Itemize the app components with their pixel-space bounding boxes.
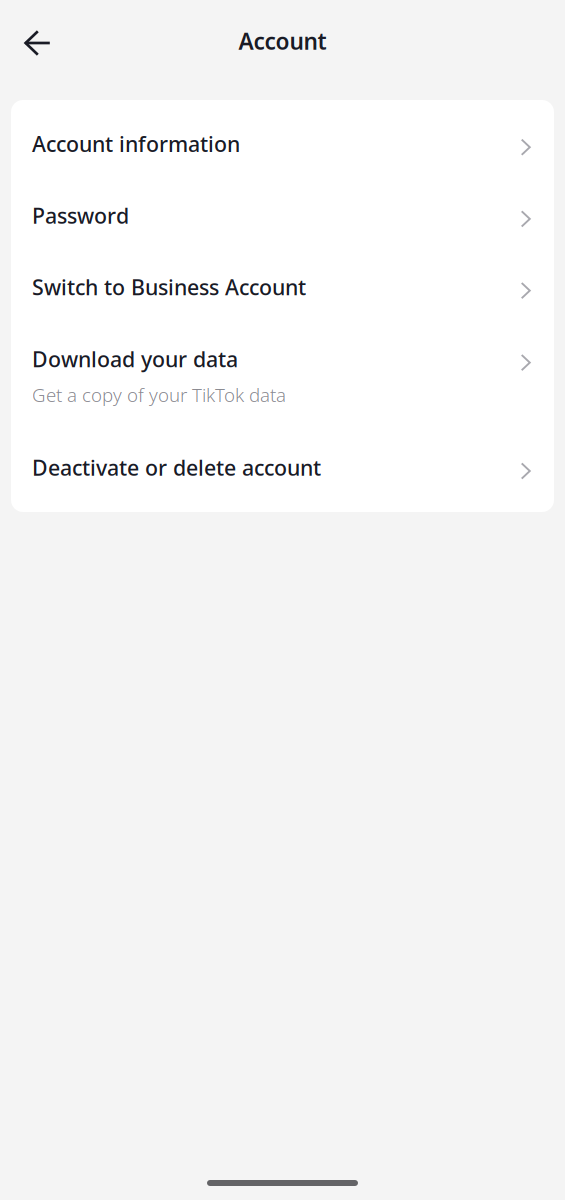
staticText: Account information [32, 129, 240, 158]
staticText: Password [32, 201, 129, 229]
button[interactable]: Download your data [11, 315, 554, 424]
staticText: Switch to Business Account [32, 273, 306, 301]
button[interactable]: Deactivate or delete account [11, 424, 554, 512]
staticText: Download your data [32, 345, 238, 373]
button[interactable]: Back [0, 16, 69, 70]
button[interactable]: Account information [11, 100, 554, 172]
staticText: Get a copy of your TikTok data [32, 382, 286, 407]
staticText: Deactivate or delete account [32, 453, 321, 482]
button[interactable]: Password [11, 172, 554, 243]
button[interactable]: Switch to Business Account [11, 243, 554, 315]
staticText: Account [238, 26, 326, 56]
